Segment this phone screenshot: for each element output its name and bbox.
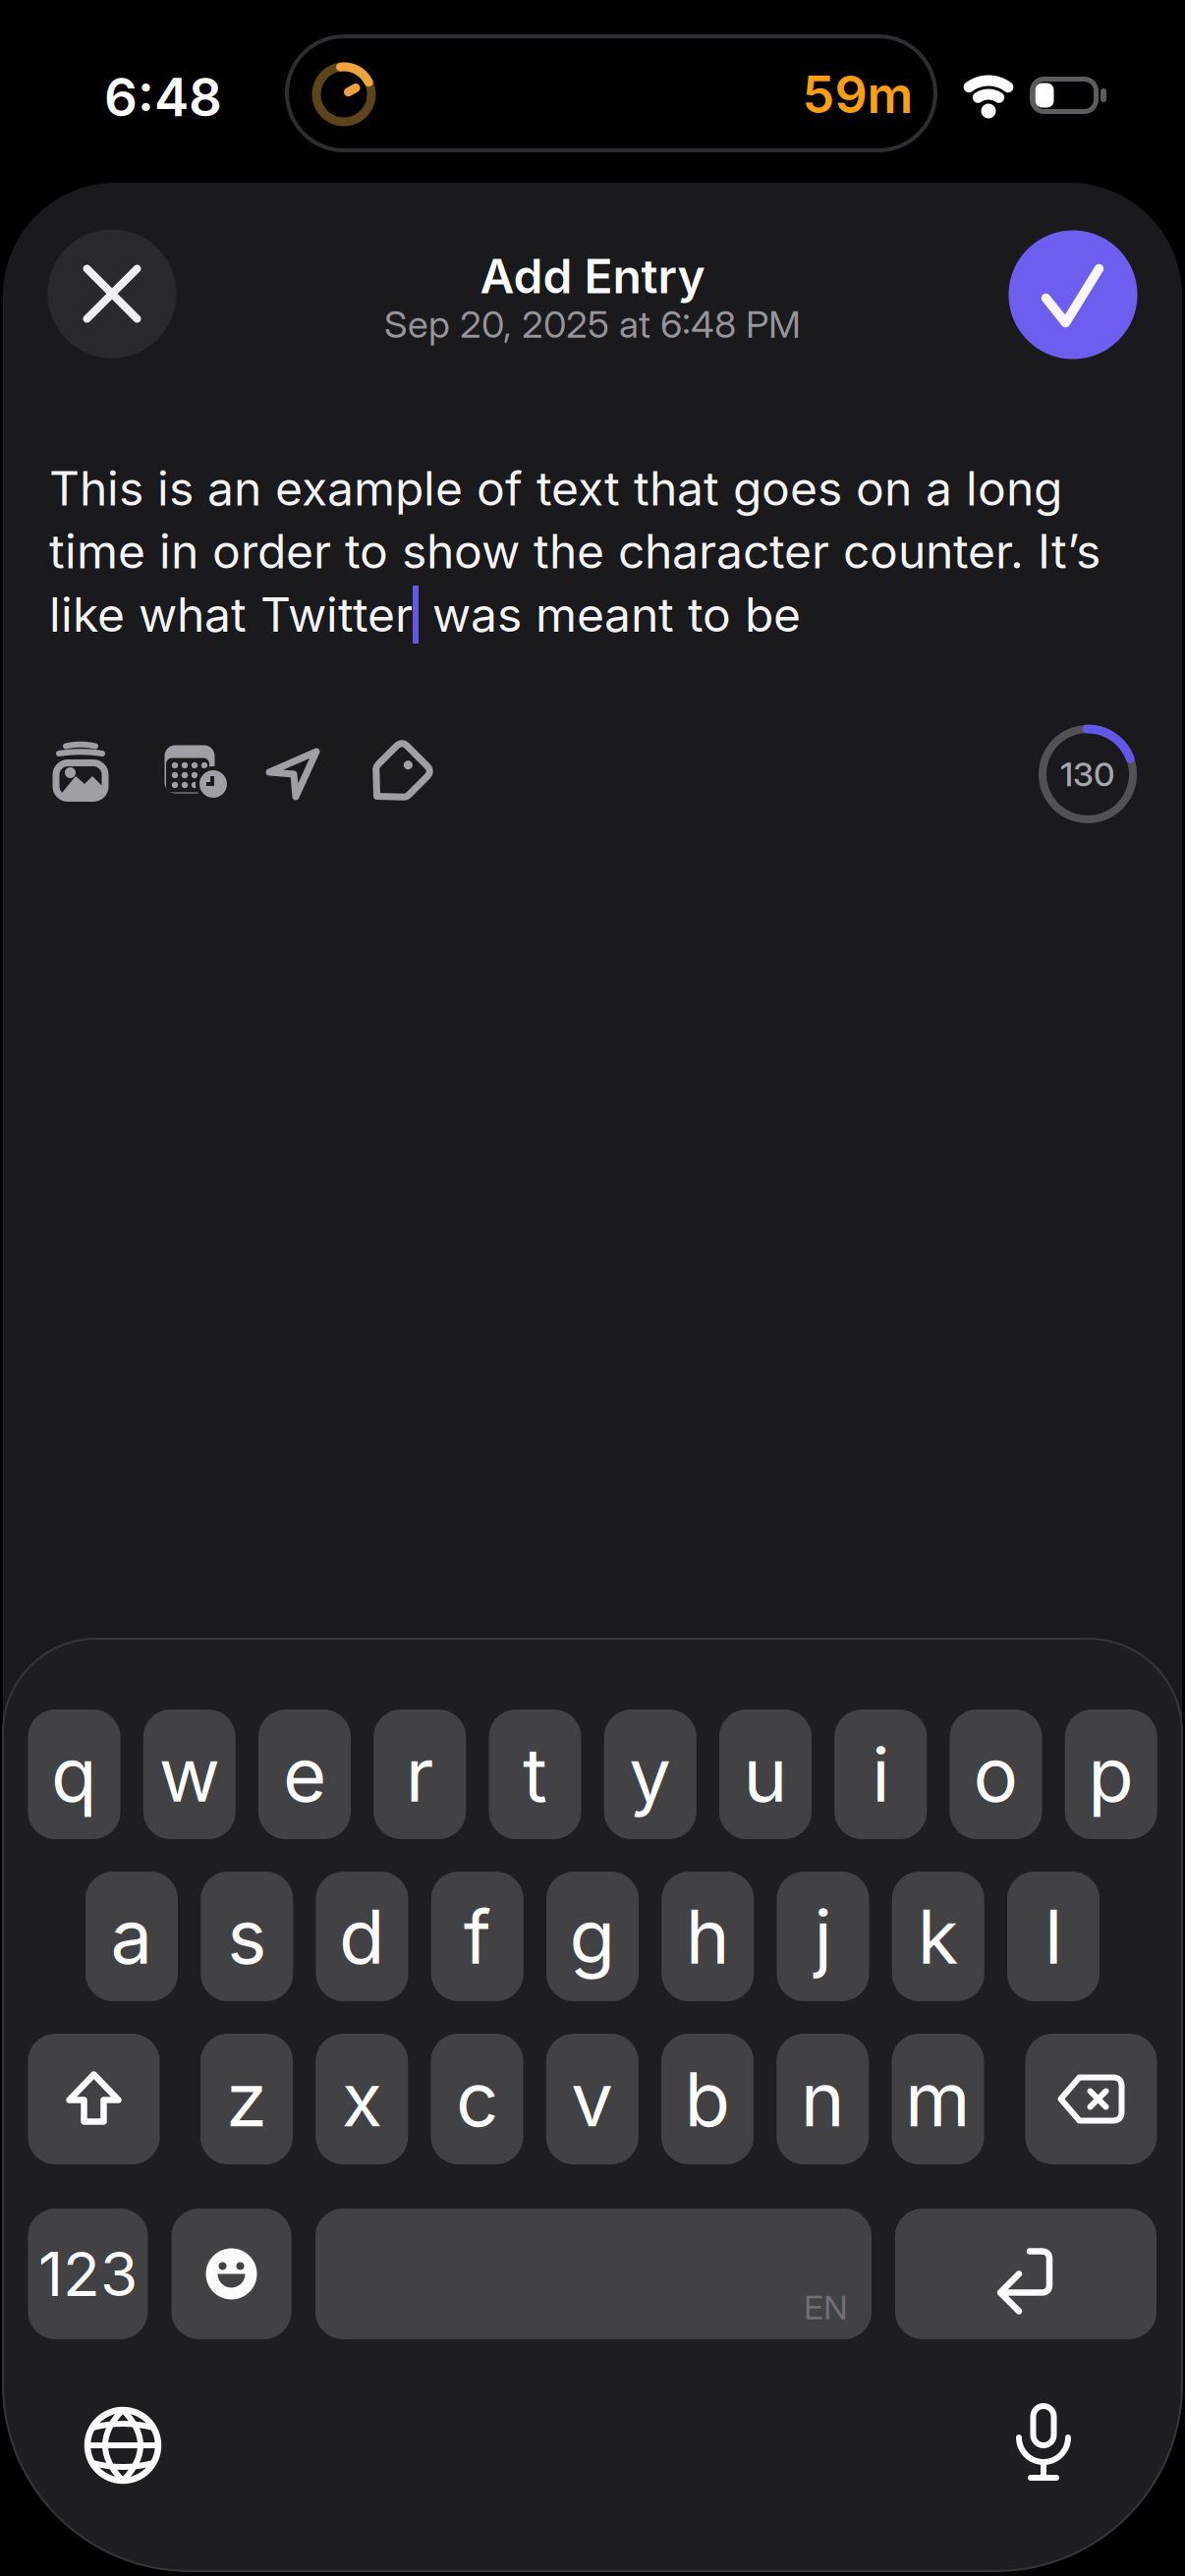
staticText: v [571,2054,613,2144]
staticText: b [684,2054,731,2144]
button[interactable]: r [374,1709,466,1839]
button[interactable]: n [776,2034,869,2164]
staticText: l [1044,1891,1062,1982]
staticText: like what Twitter [49,586,413,643]
button[interactable]: x [316,2034,408,2164]
button[interactable]: v [546,2034,638,2164]
button[interactable]: m [892,2034,984,2164]
button[interactable]: g [546,1872,639,2001]
staticText: w [159,1729,220,1820]
staticText: p [1088,1729,1134,1820]
staticText: h [686,1891,730,1982]
button[interactable]: t [489,1709,581,1839]
button[interactable]: o [950,1709,1042,1839]
button[interactable]: d [316,1872,408,2001]
button[interactable]: b [661,2034,754,2164]
button[interactable]: Add photo [49,743,112,804]
button[interactable]: u [719,1709,812,1839]
staticText: z [226,2054,267,2144]
staticText: c [456,2054,498,2144]
staticText: r [406,1729,434,1820]
staticText: 123 [38,2237,138,2311]
staticText: y [629,1729,671,1820]
button[interactable]: e [258,1709,351,1839]
staticText: m [905,2054,971,2144]
staticText: s [227,1891,266,1982]
button[interactable]: s [201,1872,293,2001]
staticText: 59m [802,63,913,125]
staticText: u [743,1729,788,1820]
button[interactable]: Return [895,2209,1157,2339]
staticText: time in order to show the character coun… [49,523,1100,580]
staticText: EN [804,2287,848,2327]
button[interactable]: i [834,1709,927,1839]
staticText: This is an example of text that goes on … [49,460,1062,517]
staticText: x [342,2054,382,2144]
staticText: Add Entry [480,248,705,305]
staticText: i [872,1729,889,1820]
button[interactable]: p [1065,1709,1157,1839]
button[interactable]: Shift [28,2034,160,2164]
button[interactable]: w [143,1709,236,1839]
staticText: f [464,1891,491,1982]
button[interactable]: Emoji [171,2209,291,2339]
staticText: d [339,1891,385,1982]
button[interactable]: k [892,1872,984,2001]
button[interactable]: a [85,1872,178,2001]
button[interactable]: 123 [28,2209,148,2339]
button[interactable]: j [777,1872,869,2001]
button[interactable]: Close [48,229,176,358]
button[interactable]: z [200,2034,293,2164]
button[interactable]: Set date [164,745,229,800]
button[interactable]: Delete [1025,2034,1157,2164]
staticText: q [51,1729,97,1820]
staticText: k [918,1891,959,1982]
staticText: 6:48 [104,66,222,129]
staticText: was meant to be [419,586,801,643]
button[interactable]: Add location [266,749,319,800]
staticText: n [801,2054,845,2144]
staticText: 130 [1060,754,1115,794]
staticText: a [111,1891,153,1982]
staticText: t [523,1729,547,1820]
staticText: g [569,1891,616,1982]
button[interactable]: y [604,1709,696,1839]
button[interactable]: Next keyboard [84,2406,162,2485]
staticText: e [283,1729,326,1820]
staticText: Sep 20, 2025 at 6:48 PM [384,302,801,347]
button[interactable]: Space [315,2209,872,2339]
button[interactable]: q [28,1709,120,1839]
staticText: o [973,1729,1018,1820]
button[interactable]: Save [1009,230,1137,359]
button[interactable]: f [431,1872,524,2001]
button[interactable]: Add tag [367,754,426,799]
button[interactable]: l [1007,1872,1100,2001]
staticText: j [814,1891,832,1982]
button[interactable]: Dictate [1014,2401,1073,2484]
button[interactable]: h [661,1872,754,2001]
button[interactable]: c [431,2034,523,2164]
